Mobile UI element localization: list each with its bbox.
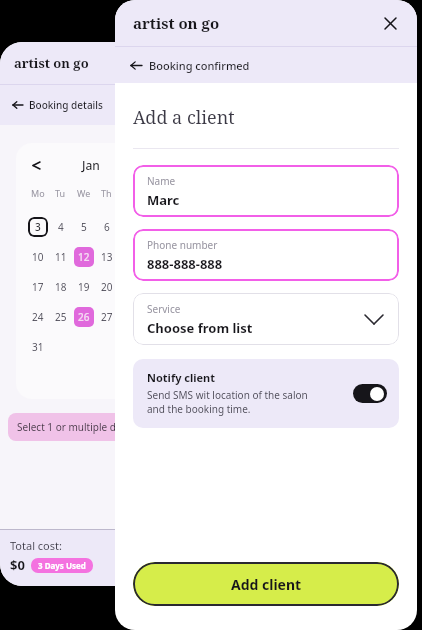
staticText: Booking details — [29, 98, 103, 112]
button[interactable]: Booking confirmed — [115, 47, 417, 83]
staticText: 18 — [55, 280, 67, 294]
staticText: Phone number — [147, 238, 218, 252]
staticText: Send SMS wit location of the salon and t… — [147, 388, 308, 416]
staticText: Th — [101, 187, 112, 199]
staticText: Tu — [55, 187, 66, 199]
staticText: 20 — [101, 280, 113, 294]
staticText: 19 — [78, 280, 90, 294]
button[interactable]: 4 — [51, 217, 71, 237]
button[interactable]: Close — [375, 8, 405, 38]
staticText: 27 — [101, 310, 113, 324]
staticText: 6 — [104, 220, 110, 234]
staticText: 5 — [81, 220, 87, 234]
button[interactable]: 5 — [74, 217, 94, 237]
staticText: Add a client — [133, 105, 235, 130]
button[interactable]: Service — [133, 293, 399, 345]
staticText: Name — [147, 174, 176, 188]
button[interactable]: Phone number — [133, 229, 399, 281]
staticText: 11 — [55, 250, 67, 264]
button[interactable]: 18 — [51, 277, 71, 297]
staticText: 17 — [32, 280, 44, 294]
button[interactable]: 17 — [28, 277, 48, 297]
button[interactable]: 11 — [51, 247, 71, 267]
button[interactable]: 13 — [97, 247, 117, 267]
staticText: 10 — [32, 250, 44, 264]
staticText: 26 — [78, 310, 90, 324]
staticText: Marc — [147, 191, 180, 209]
staticText: 3 Days Used — [38, 560, 86, 571]
button[interactable]: 19 — [74, 277, 94, 297]
button[interactable]: 3 — [28, 217, 48, 237]
staticText: 24 — [32, 310, 44, 324]
button[interactable]: 25 — [51, 307, 71, 327]
staticText: Mo — [31, 187, 45, 199]
button[interactable]: Name — [133, 165, 399, 217]
button[interactable]: 10 — [28, 247, 48, 267]
button[interactable]: Previous month — [26, 155, 46, 175]
staticText: Choose from list — [147, 319, 253, 337]
staticText: artist on go — [133, 13, 220, 33]
staticText: Notify client — [147, 370, 216, 385]
staticText: artist on go — [14, 54, 89, 72]
staticText: 3 — [35, 220, 41, 234]
button[interactable]: Notify client — [133, 359, 399, 428]
button[interactable]: 6 — [97, 217, 117, 237]
staticText: Total cost: — [10, 538, 62, 553]
staticText: 888-888-888 — [147, 255, 223, 273]
button[interactable]: 31 — [28, 337, 48, 357]
staticText: 25 — [55, 310, 67, 324]
staticText: 12 — [78, 250, 90, 264]
button[interactable]: 12 — [74, 247, 94, 267]
button[interactable]: Notify client toggle — [353, 384, 387, 403]
staticText: Service — [147, 302, 181, 316]
button[interactable]: 20 — [97, 277, 117, 297]
button[interactable]: Booking details — [0, 85, 180, 125]
staticText: $0 — [10, 556, 25, 574]
staticText: We — [77, 187, 91, 199]
button[interactable]: 27 — [97, 307, 117, 327]
staticText: 13 — [101, 250, 113, 264]
staticText: 31 — [32, 340, 44, 354]
button[interactable]: 26 — [74, 307, 94, 327]
button[interactable]: Add client — [133, 562, 399, 606]
staticText: Add client — [231, 575, 302, 594]
staticText: Booking confirmed — [149, 58, 250, 73]
staticText: Select 1 or multiple days — [17, 420, 132, 434]
staticText: 4 — [58, 220, 64, 234]
button[interactable]: 24 — [28, 307, 48, 327]
staticText: Jan — [82, 157, 100, 173]
